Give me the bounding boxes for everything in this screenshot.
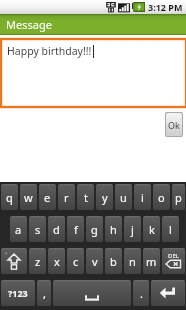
staticText: Message	[6, 17, 52, 32]
staticText: e	[44, 190, 51, 205]
staticText: h	[110, 222, 117, 237]
button[interactable]: b	[105, 248, 122, 274]
button[interactable]: x	[48, 248, 65, 274]
staticText: f	[74, 222, 78, 237]
button[interactable]: ?123	[1, 280, 35, 306]
staticText: i	[141, 190, 144, 205]
button[interactable]: f	[67, 216, 84, 242]
staticText: .	[140, 286, 143, 301]
button[interactable]: d	[48, 216, 65, 242]
button[interactable]: o	[153, 184, 170, 210]
button[interactable]: m	[143, 248, 160, 274]
button[interactable]: k	[143, 216, 160, 242]
staticText: r	[64, 190, 69, 205]
staticText: c	[73, 254, 79, 269]
staticText: 3:12 PM	[148, 1, 183, 13]
button[interactable]: Shift	[1, 248, 27, 274]
button[interactable]: Delete	[162, 248, 185, 274]
staticText: Happy birthday!!!	[7, 44, 92, 58]
button[interactable]: t	[77, 184, 94, 210]
button[interactable]: w	[20, 184, 37, 210]
button[interactable]: a	[10, 216, 27, 242]
button[interactable]: s	[29, 216, 46, 242]
staticText: u	[120, 190, 127, 205]
button[interactable]: n	[124, 248, 141, 274]
staticText: q	[6, 190, 13, 205]
button[interactable]: h	[105, 216, 122, 242]
button[interactable]: z	[29, 248, 46, 274]
button[interactable]: e	[39, 184, 56, 210]
staticText: w	[24, 190, 33, 205]
button[interactable]: Ok	[166, 113, 182, 136]
staticText: Ok	[168, 119, 180, 131]
button[interactable]: Happy birthday!!!	[1, 39, 186, 107]
button[interactable]: ,	[37, 280, 51, 306]
button[interactable]: r	[58, 184, 75, 210]
staticText: g	[91, 222, 98, 237]
staticText: m	[146, 254, 157, 269]
staticText: ?123	[8, 287, 28, 299]
staticText: p	[175, 190, 182, 205]
staticText: y	[102, 190, 108, 205]
button[interactable]: Space	[53, 280, 131, 306]
staticText: x	[54, 254, 60, 269]
button[interactable]: Enter	[151, 280, 185, 306]
staticText: s	[35, 222, 41, 237]
button[interactable]: u	[115, 184, 132, 210]
staticText: o	[158, 190, 165, 205]
staticText: b	[110, 254, 117, 269]
staticText: a	[15, 222, 22, 237]
staticText: n	[129, 254, 136, 269]
staticText: l	[169, 222, 172, 237]
button[interactable]: g	[86, 216, 103, 242]
staticText: k	[149, 222, 155, 237]
staticText: v	[92, 254, 98, 269]
staticText: j	[131, 222, 134, 237]
button[interactable]: c	[67, 248, 84, 274]
staticText: ,	[43, 286, 46, 301]
staticText: z	[35, 254, 41, 269]
staticText: d	[53, 222, 60, 237]
button[interactable]: j	[124, 216, 141, 242]
button[interactable]: i	[134, 184, 151, 210]
staticText: t	[84, 190, 88, 205]
button[interactable]: v	[86, 248, 103, 274]
button[interactable]: .	[133, 280, 149, 306]
button[interactable]: l	[162, 216, 179, 242]
button[interactable]: p	[172, 184, 185, 210]
button[interactable]: y	[96, 184, 113, 210]
button[interactable]: q	[1, 184, 18, 210]
staticText: DEL	[168, 252, 179, 260]
